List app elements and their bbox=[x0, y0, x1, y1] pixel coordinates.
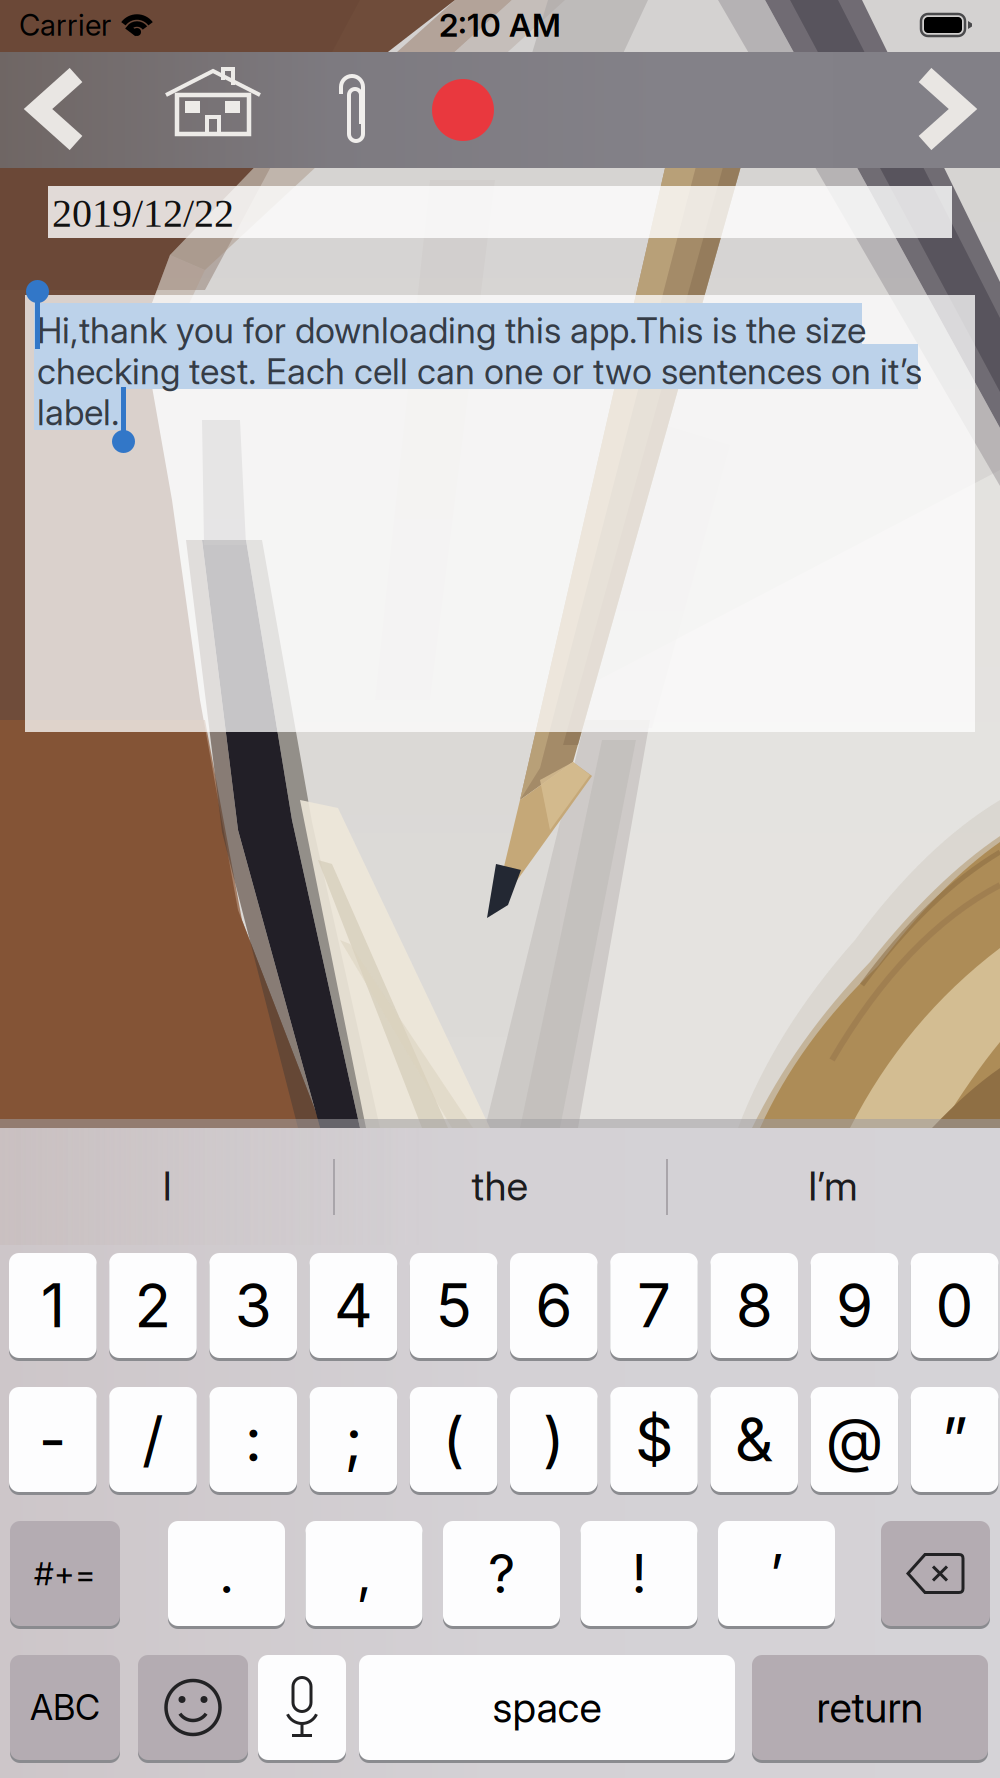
staticText: 2 bbox=[134, 1269, 171, 1342]
staticText: I’m bbox=[808, 1162, 858, 1210]
button[interactable]: ” bbox=[911, 1387, 998, 1495]
button[interactable]: 3 bbox=[209, 1253, 297, 1361]
button[interactable]: Forward bbox=[917, 71, 973, 147]
button[interactable]: 9 bbox=[811, 1253, 898, 1361]
button[interactable]: return bbox=[752, 1655, 988, 1763]
button[interactable]: I’m bbox=[668, 1128, 998, 1244]
button[interactable]: . bbox=[168, 1521, 285, 1629]
button[interactable]: ! bbox=[580, 1521, 697, 1629]
button[interactable]: & bbox=[710, 1387, 798, 1495]
button[interactable]: 2019/12/22 bbox=[48, 186, 952, 238]
staticText: return bbox=[816, 1682, 923, 1732]
staticText: @ bbox=[825, 1403, 883, 1476]
button[interactable]: Emoji bbox=[138, 1655, 248, 1763]
button[interactable]: the bbox=[335, 1128, 665, 1244]
staticText: checking test. Each cell can one or two … bbox=[37, 350, 922, 393]
staticText: . bbox=[219, 1541, 234, 1606]
staticText: 1 bbox=[41, 1269, 65, 1342]
staticText: ) bbox=[543, 1403, 565, 1476]
staticText: ? bbox=[488, 1541, 515, 1606]
button[interactable]: Attach photo bbox=[332, 70, 372, 146]
button[interactable]: 2 bbox=[109, 1253, 197, 1361]
staticText: 7 bbox=[637, 1269, 671, 1342]
staticText: 9 bbox=[836, 1269, 873, 1342]
button[interactable]: 4 bbox=[310, 1253, 397, 1361]
button[interactable]: $ bbox=[610, 1387, 698, 1495]
button[interactable]: 0 bbox=[911, 1253, 998, 1361]
staticText: ; bbox=[344, 1403, 362, 1476]
button[interactable]: 5 bbox=[410, 1253, 497, 1361]
staticText: ” bbox=[942, 1403, 968, 1476]
button[interactable]: ) bbox=[510, 1387, 598, 1495]
button[interactable]: 7 bbox=[610, 1253, 698, 1361]
staticText: / bbox=[142, 1403, 164, 1476]
staticText: 2:10 AM bbox=[439, 6, 561, 44]
staticText: Carrier bbox=[19, 7, 111, 43]
staticText: ’ bbox=[769, 1541, 783, 1606]
button[interactable]: ABC bbox=[10, 1655, 120, 1763]
staticText: 0 bbox=[936, 1269, 974, 1342]
button[interactable]: Home bbox=[166, 68, 260, 136]
staticText: #+= bbox=[34, 1554, 96, 1593]
button[interactable]: @ bbox=[811, 1387, 898, 1495]
staticText: - bbox=[39, 1403, 67, 1476]
staticText: & bbox=[735, 1403, 774, 1476]
button[interactable]: Back bbox=[28, 71, 84, 147]
staticText: , bbox=[356, 1541, 371, 1606]
staticText: 8 bbox=[736, 1269, 773, 1342]
staticText: space bbox=[492, 1682, 601, 1732]
button[interactable]: 8 bbox=[710, 1253, 798, 1361]
button[interactable]: Record bbox=[432, 79, 494, 141]
staticText: 2019/12/22 bbox=[52, 191, 234, 235]
staticText: label. bbox=[37, 391, 120, 434]
staticText: 5 bbox=[436, 1269, 472, 1342]
staticText: 4 bbox=[334, 1269, 373, 1342]
button[interactable]: #+= bbox=[10, 1521, 120, 1629]
button[interactable]: / bbox=[109, 1387, 197, 1495]
staticText: : bbox=[245, 1403, 262, 1476]
button[interactable]: ’ bbox=[718, 1521, 835, 1629]
button[interactable]: ( bbox=[410, 1387, 497, 1495]
staticText: ( bbox=[443, 1403, 465, 1476]
button[interactable]: ; bbox=[310, 1387, 397, 1495]
staticText: $ bbox=[635, 1403, 673, 1476]
button[interactable]: I bbox=[2, 1128, 332, 1244]
button[interactable]: Delete bbox=[881, 1521, 990, 1629]
button[interactable]: Dictate bbox=[258, 1655, 346, 1763]
staticText: Hi,thank you for downloading this app.Th… bbox=[37, 309, 866, 352]
button[interactable]: space bbox=[359, 1655, 735, 1763]
staticText: the bbox=[471, 1162, 528, 1210]
staticText: 3 bbox=[235, 1269, 272, 1342]
button[interactable]: 1 bbox=[9, 1253, 97, 1361]
button[interactable]: 6 bbox=[510, 1253, 598, 1361]
staticText: I bbox=[162, 1162, 171, 1210]
button[interactable]: - bbox=[9, 1387, 97, 1495]
staticText: ! bbox=[631, 1541, 646, 1606]
button[interactable]: ? bbox=[443, 1521, 560, 1629]
staticText: ABC bbox=[30, 1686, 100, 1728]
button[interactable]: : bbox=[209, 1387, 297, 1495]
button[interactable]: , bbox=[305, 1521, 422, 1629]
staticText: 6 bbox=[535, 1269, 572, 1342]
